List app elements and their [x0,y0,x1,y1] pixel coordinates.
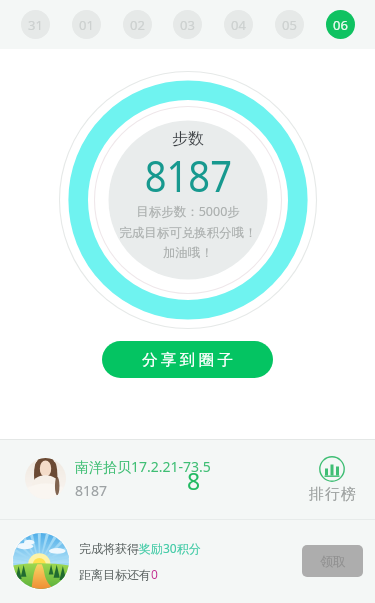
button[interactable]: 南洋拾贝17.2.21-73.5 [0,440,375,519]
staticText: 03 [180,16,195,34]
staticText: 距离目标还有0 [79,566,158,582]
staticText: 排行榜 [309,485,357,504]
button[interactable]: 01 [72,10,101,39]
staticText: 06 [333,16,348,34]
staticText: 31 [28,16,43,34]
button[interactable]: 完成将获得奖励30积分 [0,520,375,603]
staticText: 8187 [145,145,232,205]
other: 排行榜 [319,456,345,482]
staticText: 步数 [172,129,204,149]
staticText: 分享到圈子 [142,350,237,370]
button[interactable]: 05 [275,10,304,39]
staticText: 8 [187,465,201,496]
button[interactable]: 03 [173,10,202,39]
staticText: 02 [130,16,145,34]
staticText: 领取 [320,553,346,569]
staticText: 05 [282,16,297,34]
button[interactable]: 排行榜 [300,440,365,519]
staticText: 目标步数：5000步 完成目标可兑换积分哦！ 加油哦！ [119,203,257,261]
button[interactable]: 领取 [302,545,363,577]
staticText: 01 [79,16,94,34]
button[interactable]: 分享到圈子 [102,341,273,378]
staticText: 完成将获得奖励30积分 [79,540,201,556]
button[interactable]: 02 [123,10,152,39]
staticText: 04 [231,16,246,34]
staticText: 南洋拾贝17.2.21-73.5 [75,457,211,476]
button[interactable]: 06 [326,10,355,39]
button[interactable]: 04 [224,10,253,39]
staticText: 8187 [75,481,108,500]
button[interactable]: 31 [21,10,50,39]
